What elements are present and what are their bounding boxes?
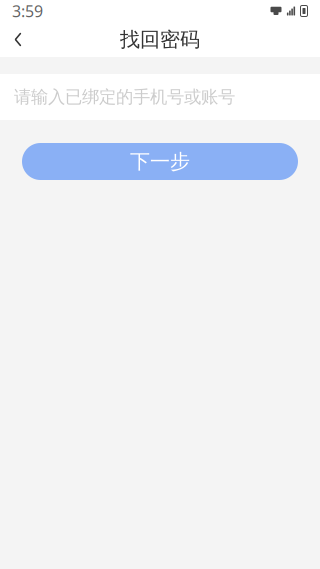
staticText: 3:59	[12, 0, 43, 22]
staticText: 下一步	[130, 149, 190, 174]
button[interactable]: Back	[0, 22, 36, 57]
staticText: 找回密码	[120, 27, 200, 52]
staticText: 请输入已绑定的手机号或账号	[14, 86, 235, 108]
button[interactable]: 下一步	[22, 143, 298, 180]
